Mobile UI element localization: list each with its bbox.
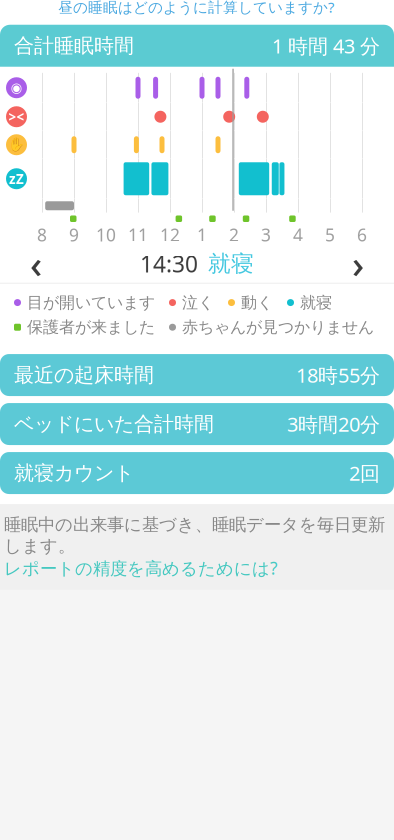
staticText: 合計睡眠時間 [14,33,134,58]
button[interactable]: 次へ [330,246,386,282]
staticText: 8 [37,223,47,246]
staticText: 就寝 [208,250,254,278]
staticText: 3 [261,223,271,246]
button[interactable]: 前へ [8,246,64,282]
staticText: › [352,239,364,289]
staticText: 1 時間 43 分 [272,32,380,59]
staticText: 2回 [349,460,380,486]
staticText: 就寝カウント [14,461,134,485]
button[interactable]: レポートの精度を高めるためには? [4,557,278,580]
staticText: zZ [9,170,24,188]
staticText: 泣く [182,293,214,312]
staticText: ◉ [10,80,22,95]
button[interactable]: 最近の起床時間 [0,354,394,396]
button[interactable]: 就寝カウント [0,452,394,494]
staticText: 18時55分 [296,362,380,388]
button[interactable]: 昼の睡眠はどのように計算していますか? [58,0,334,17]
staticText: 昼の睡眠はどのように計算していますか? [58,0,334,17]
staticText: 14:30 [140,249,198,279]
staticText: 10 [96,223,116,246]
staticText: 赤ちゃんが見つかりません [182,317,374,337]
staticText: ‹ [30,239,42,289]
staticText: ベッドにいた合計時間 [14,412,214,436]
staticText: >< [8,108,24,126]
staticText: 2 [229,223,239,246]
staticText: 保護者が来ました [27,317,155,337]
button[interactable]: ベッドにいた合計時間 [0,403,394,445]
staticText: 就寝 [300,293,332,312]
staticText: 11 [128,223,148,246]
staticText: 4 [293,223,303,246]
staticText: 睡眠中の出来事に基づき、睡眠データを毎日更新します。 [4,514,385,557]
staticText: 目が開いています [27,293,155,312]
staticText: ✋ [8,137,25,152]
staticText: 9 [69,223,79,246]
staticText: 3時間20分 [287,411,380,437]
staticText: レポートの精度を高めるためには? [4,557,278,580]
staticText: 5 [325,223,335,246]
staticText: 1 [197,223,207,246]
staticText: 動く [241,293,273,312]
staticText: 6 [357,223,367,246]
staticText: 最近の起床時間 [14,363,154,387]
staticText: 12 [160,223,180,246]
